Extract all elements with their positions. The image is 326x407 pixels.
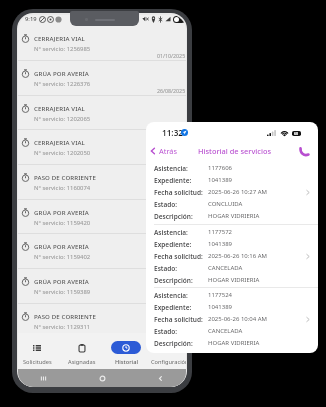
staticText: Historial de servicios <box>198 146 272 156</box>
staticText: 9:19 <box>25 15 37 23</box>
button[interactable]: Asistencia: <box>146 226 318 286</box>
staticText: 1177572 <box>208 228 233 236</box>
staticText: Expediente: <box>154 176 192 185</box>
staticText: Expediente: <box>154 240 192 249</box>
staticText: 1041389 <box>208 240 233 248</box>
staticText: 26/08/2025 <box>157 87 186 94</box>
button[interactable]: CERRAJERIA VIAL <box>18 130 186 165</box>
staticText: Historial <box>115 358 138 366</box>
staticText: Expediente: <box>154 303 192 312</box>
staticText: PASO DE CORRIENTE <box>34 312 96 320</box>
staticText: Solicitudes <box>23 358 52 366</box>
button[interactable]: Asistencia: <box>146 162 318 222</box>
staticText: N° servicio: 1202065 <box>34 115 91 123</box>
staticText: Descripción: <box>154 339 193 348</box>
staticText: PASO DE CORRIENTE <box>34 173 96 181</box>
staticText: CONCLUIDA <box>208 200 243 208</box>
button[interactable]: Configuración <box>144 333 186 369</box>
button[interactable]: Asignadas <box>56 333 108 369</box>
button[interactable]: Solicitudes <box>18 333 63 369</box>
staticText: HOGAR VIDRIERIA <box>208 212 260 220</box>
staticText: GRÚA POR AVERÍA <box>34 208 89 216</box>
staticText: 1041389 <box>208 176 233 184</box>
staticText: 60 <box>294 131 299 136</box>
button[interactable]: GRÚA POR AVERÍA <box>18 61 186 96</box>
staticText: N° servicio: 1159402 <box>34 253 91 261</box>
button[interactable]: Llamar <box>297 144 311 158</box>
staticText: Estado: <box>154 327 178 336</box>
staticText: N° servicio: 1129311 <box>34 323 91 331</box>
button[interactable]: CERRAJERIA VIAL <box>18 29 186 61</box>
staticText: N° servicio: 1202050 <box>34 149 91 157</box>
button[interactable]: Atrás <box>148 145 178 157</box>
staticText: Descripción: <box>154 276 193 285</box>
staticText: Fecha solicitud: <box>154 188 203 197</box>
staticText: N° servicio: 1256985 <box>34 45 91 53</box>
button[interactable]: PASO DE CORRIENTE <box>18 165 186 200</box>
staticText: 2025-06-26 10:16 AM <box>208 252 268 260</box>
staticText: N° servicio: 1226376 <box>34 80 91 88</box>
staticText: 01/10/2025 <box>157 52 186 59</box>
button[interactable]: Asistencia: <box>146 289 318 349</box>
staticText: N° servicio: 1159420 <box>34 219 91 227</box>
staticText: 1041389 <box>208 303 233 311</box>
staticText: Estado: <box>154 200 178 209</box>
button[interactable]: GRÚA POR AVERÍA <box>18 269 186 304</box>
staticText: CERRAJERIA VIAL <box>34 104 85 112</box>
staticText: N° servicio: 1160074 <box>34 184 91 192</box>
button[interactable]: PASO DE CORRIENTE <box>18 304 186 333</box>
staticText: 2025-06-26 10:04 AM <box>208 315 268 323</box>
staticText: 1177524 <box>208 291 233 299</box>
staticText: 1177606 <box>208 164 233 172</box>
staticText: Estado: <box>154 264 178 273</box>
staticText: N° servicio: 1159389 <box>34 288 91 296</box>
staticText: CANCELADA <box>208 264 243 272</box>
staticText: 11:32 <box>162 127 183 138</box>
staticText: Asignadas <box>68 358 96 366</box>
staticText: CERRAJERIA VIAL <box>34 138 85 146</box>
button[interactable]: GRÚA POR AVERÍA <box>18 234 186 269</box>
button[interactable]: CERRAJERIA VIAL <box>18 96 186 131</box>
staticText: Atrás <box>159 146 177 156</box>
button[interactable]: GRÚA POR AVERÍA <box>18 200 186 235</box>
staticText: GRÚA POR AVERÍA <box>34 242 89 250</box>
staticText: Asistencia: <box>154 228 188 237</box>
staticText: CERRAJERIA VIAL <box>34 34 85 42</box>
staticText: Fecha solicitud: <box>154 315 203 324</box>
staticText: CANCELADA <box>208 327 243 335</box>
staticText: HOGAR VIDRIERIA <box>208 276 260 284</box>
staticText: 2025-06-26 10:27 AM <box>208 188 268 196</box>
staticText: HOGAR VIDRIERIA <box>208 339 260 347</box>
staticText: Descripción: <box>154 212 193 221</box>
staticText: Asistencia: <box>154 164 188 173</box>
staticText: Asistencia: <box>154 291 188 300</box>
button[interactable]: Historial <box>100 333 152 369</box>
staticText: GRÚA POR AVERÍA <box>34 277 89 285</box>
staticText: Fecha solicitud: <box>154 252 203 261</box>
staticText: GRÚA POR AVERÍA <box>34 69 89 77</box>
staticText: Configuración <box>151 358 186 366</box>
